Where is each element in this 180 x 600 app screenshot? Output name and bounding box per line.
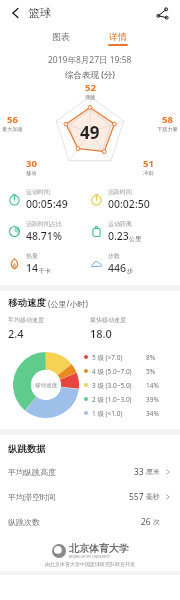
staticText: 次 [151, 517, 160, 527]
staticText: 最大加速 [2, 126, 23, 133]
staticText: 14 [26, 261, 39, 275]
staticText: 平均滞空时间 [8, 492, 56, 502]
staticText: 446 [108, 261, 127, 275]
staticText: BEIJING SPORT UNIVERSITY [69, 555, 111, 559]
staticText: 厘米 [144, 467, 160, 477]
staticText: 运动距离 [108, 220, 132, 228]
button[interactable]: 3 级 (3.0~5.0) [84, 378, 172, 392]
staticText: 00:05:49 [26, 197, 68, 211]
staticText: 公里 [129, 235, 141, 243]
button[interactable]: 4 级 (5.0~7.0) [84, 364, 172, 378]
staticText: 纵跳次数 [8, 517, 40, 527]
button[interactable]: Back [6, 3, 26, 23]
staticText: 下肢力量 [157, 126, 178, 133]
button[interactable]: 运动距离 [90, 220, 172, 243]
staticText: 1 级 (<1.0) [92, 409, 123, 418]
staticText: 平均移动速度 [8, 316, 44, 324]
staticText: 00:02:50 [108, 197, 150, 211]
button[interactable]: 步数 [90, 252, 172, 275]
staticText: 48.71% [26, 229, 62, 243]
staticText: (公里/小时) [46, 298, 88, 309]
staticText: 千卡 [39, 267, 51, 275]
button[interactable]: Share [152, 3, 172, 23]
button[interactable]: 5 级 (>7.0) [84, 350, 172, 364]
staticText: 图表 [52, 31, 70, 42]
staticText: 3 级 (3.0~5.0) [92, 381, 132, 390]
staticText: 活跃时间 [108, 188, 132, 196]
button[interactable]: 平均纵跳高度 [8, 459, 172, 484]
button[interactable]: 纵跳次数 [8, 509, 172, 534]
button[interactable]: 1 级 (<1.0) [84, 406, 172, 420]
staticText: 557 [129, 491, 144, 503]
staticText: 5% [146, 367, 156, 376]
staticText: 2 级 (1.0~3.0) [92, 395, 132, 404]
staticText: 毫秒 [144, 492, 160, 502]
staticText: 14% [146, 381, 159, 390]
staticText: 30 [26, 157, 37, 170]
staticText: 18.0 [90, 326, 112, 341]
staticText: 运动时间 [26, 188, 50, 196]
staticText: 步数 [108, 252, 120, 260]
staticText: 58 [162, 113, 173, 126]
button[interactable]: 活跃时间 [90, 188, 172, 211]
staticText: 49 [80, 121, 100, 144]
button[interactable]: 2 级 (1.0~3.0) [84, 392, 172, 406]
staticText: 移动速度 [8, 297, 46, 309]
button[interactable]: 运动时间 [8, 188, 90, 211]
staticText: 2019年8月27日 19:58 [48, 54, 132, 66]
button[interactable]: 详情 [102, 28, 134, 49]
button[interactable]: 图表 [46, 28, 76, 45]
button[interactable]: 热量 [8, 252, 90, 275]
staticText: 篮球 [28, 6, 51, 20]
button[interactable]: 活跃时间占比 [8, 220, 90, 243]
staticText: 冲刺 [143, 170, 154, 177]
staticText: 51 [143, 157, 154, 170]
staticText: 移动速度 [35, 382, 57, 389]
staticText: 纵跳数据 [8, 443, 46, 455]
button[interactable]: 平均滞空时间 [8, 484, 172, 509]
staticText: 综合表现 (分) [65, 69, 116, 81]
staticText: 26 [141, 516, 151, 528]
staticText: 0.23 [108, 229, 129, 243]
staticText: 移动 [26, 170, 37, 177]
staticText: 活跃时间占比 [26, 220, 62, 228]
staticText: 56 [7, 113, 18, 126]
staticText: 弹跳 [85, 94, 96, 101]
staticText: 由北京体育大学中国篮球研究队联合开发 [45, 561, 135, 567]
staticText: 5 级 (>7.0) [92, 353, 123, 362]
staticText: 2.4 [8, 326, 24, 341]
staticText: 平均纵跳高度 [8, 467, 56, 477]
staticText: 步 [127, 267, 133, 275]
staticText: 详情 [109, 31, 127, 42]
staticText: 4 级 (5.0~7.0) [92, 367, 132, 376]
staticText: 39% [146, 395, 159, 404]
staticText: 52 [85, 81, 96, 94]
staticText: 8% [146, 353, 156, 362]
staticText: 34% [146, 409, 159, 418]
staticText: 热量 [26, 252, 38, 260]
staticText: 北京体育大学 [69, 542, 129, 555]
staticText: 33 [134, 466, 144, 478]
staticText: 最快移动速度 [90, 316, 126, 324]
